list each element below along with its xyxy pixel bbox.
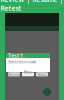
button[interactable]: Review <box>8 72 20 76</box>
button[interactable]: Retest <box>36 72 48 76</box>
staticText: Review | Resume | Retest <box>0 0 63 13</box>
staticText: Review <box>8 72 20 77</box>
button[interactable]: Resume <box>22 72 34 76</box>
staticText: Select test mode <box>8 59 36 64</box>
staticText: Test 1 <box>8 52 23 59</box>
button[interactable]: Add <box>43 88 51 96</box>
staticText: Resume <box>23 69 32 80</box>
staticText: Retest <box>37 72 47 77</box>
